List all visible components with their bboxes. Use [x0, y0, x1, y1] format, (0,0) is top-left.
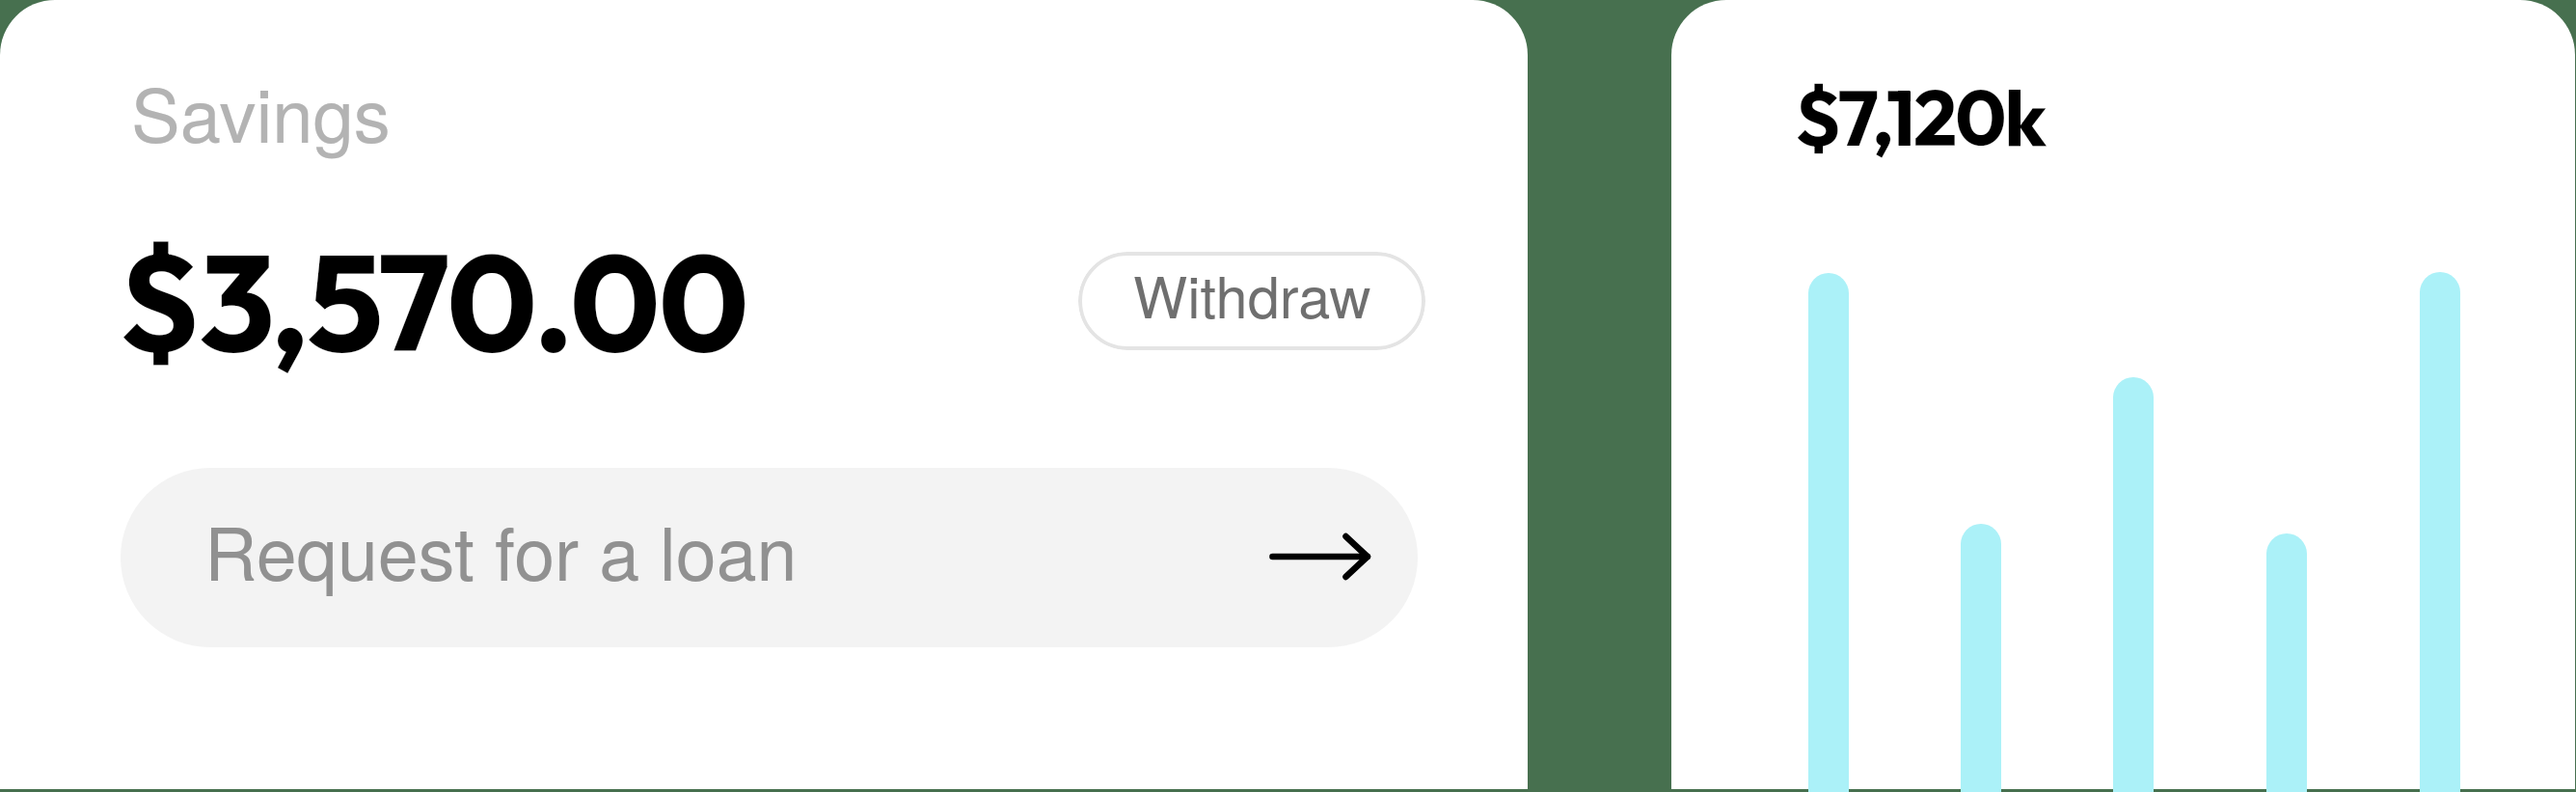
- staticText: Request for a loan: [204, 497, 798, 601]
- staticText: Savings: [131, 59, 391, 164]
- other: Request for a loan: [1255, 511, 1380, 604]
- staticText: $7,120k: [1795, 68, 2046, 166]
- staticText: $3,570.00: [119, 215, 747, 386]
- button[interactable]: Withdraw: [1078, 252, 1425, 350]
- button[interactable]: Request for a loan: [121, 468, 1418, 647]
- staticText: Withdraw: [1133, 253, 1371, 335]
